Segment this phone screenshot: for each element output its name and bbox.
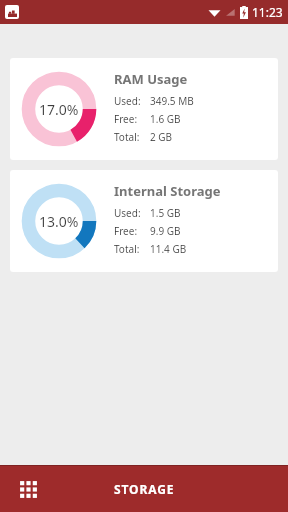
staticText: Free: <box>114 112 138 126</box>
button[interactable]: Apps grid <box>0 466 56 512</box>
staticText: Used: <box>114 94 141 108</box>
staticText: 11.4 GB <box>150 242 187 256</box>
staticText: 1.5 GB <box>150 206 181 220</box>
button[interactable]: 17.0% <box>10 58 278 160</box>
staticText: Total: <box>114 242 140 256</box>
staticText: 17.0% <box>39 100 79 119</box>
staticText: Used: <box>114 206 141 220</box>
staticText: Total: <box>114 130 140 144</box>
staticText: 13.0% <box>39 212 79 231</box>
staticText: 1.6 GB <box>150 112 181 126</box>
staticText: Free: <box>114 224 138 238</box>
staticText: 11:23 <box>252 4 283 20</box>
button[interactable]: 13.0% <box>10 170 278 272</box>
staticText: 2 GB <box>150 130 173 144</box>
staticText: 349.5 MB <box>150 94 194 108</box>
staticText: 9.9 GB <box>150 224 181 238</box>
button[interactable]: STORAGE <box>98 473 191 505</box>
staticText: RAM Usage <box>114 70 188 88</box>
staticText: STORAGE <box>114 481 175 497</box>
staticText: Internal Storage <box>114 182 221 200</box>
